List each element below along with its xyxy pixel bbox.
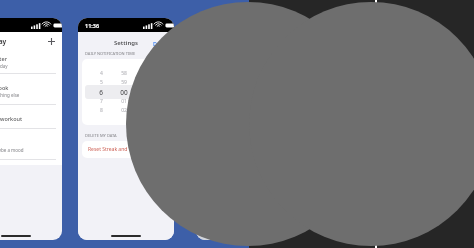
- staticText: Drink water: [0, 55, 7, 62]
- button[interactable]: Reset Streak and Tasks: [82, 141, 170, 158]
- staticText: Done: [153, 40, 168, 47]
- staticText: 7: [100, 98, 103, 105]
- button[interactable]: Journal: [0, 134, 62, 165]
- staticText: 11:36: [85, 22, 100, 29]
- staticText: 8: [100, 107, 103, 114]
- staticText: 59: [121, 79, 127, 86]
- staticText: Read a book: [0, 84, 9, 91]
- staticText: 00: [120, 88, 128, 97]
- button[interactable]: Done: [147, 37, 174, 50]
- staticText: 02: [121, 107, 127, 114]
- button[interactable]: Read a book: [0, 79, 62, 110]
- staticText: 4: [100, 70, 103, 77]
- staticText: 58: [121, 70, 127, 77]
- button[interactable]: Morning workout: [0, 110, 62, 134]
- staticText: Morning workout: [0, 115, 23, 122]
- button[interactable]: Add: [46, 36, 56, 46]
- staticText: 8 glasses a day: [0, 63, 8, 69]
- staticText: 6: [99, 88, 103, 97]
- staticText: Settings: [114, 39, 138, 47]
- staticText: 3 lines, maybe a mood: [0, 147, 24, 153]
- staticText: 5: [100, 79, 103, 86]
- button[interactable]: Tile one: [249, 0, 375, 248]
- button[interactable]: Drink water: [0, 50, 62, 79]
- button[interactable]: Tile two: [377, 0, 474, 248]
- staticText: 01: [121, 98, 127, 105]
- staticText: Reset Streak and Tasks: [88, 146, 142, 153]
- staticText: DAILY NOTIFICATION TIME: [85, 51, 136, 56]
